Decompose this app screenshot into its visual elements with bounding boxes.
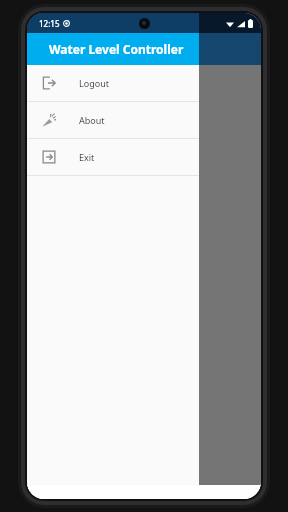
other: Exit xyxy=(42,150,56,164)
staticText: 12:15 xyxy=(39,18,60,29)
staticText: Water Level Controller xyxy=(49,41,184,57)
staticText: Exit xyxy=(79,151,95,163)
other: About xyxy=(42,113,56,127)
button[interactable]: Logout xyxy=(27,65,199,101)
button[interactable]: Exit xyxy=(27,139,199,175)
staticText: Logout xyxy=(79,77,109,89)
button[interactable] xyxy=(37,73,251,163)
staticText: Tank 2 | 12 % xyxy=(37,283,251,295)
other: Logout xyxy=(42,76,56,90)
staticText: Tank 1 | 52 % xyxy=(37,167,251,179)
staticText: About xyxy=(79,114,105,126)
button[interactable]: About xyxy=(27,102,199,138)
button[interactable] xyxy=(37,189,251,279)
